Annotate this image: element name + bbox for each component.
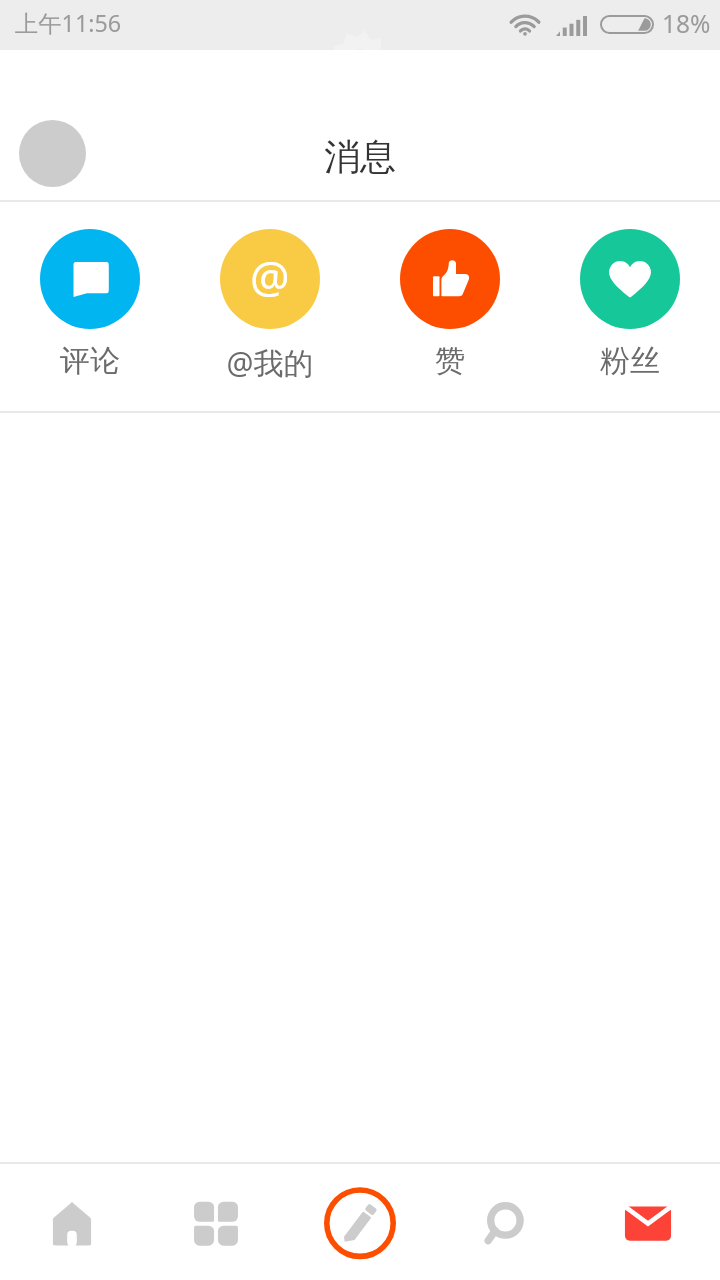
staticText: 粉丝 bbox=[540, 342, 720, 380]
button[interactable]: 粉丝 bbox=[540, 202, 720, 410]
button[interactable]: Messages bbox=[576, 1164, 720, 1280]
button[interactable]: Home bbox=[0, 1164, 144, 1280]
button[interactable]: Discover bbox=[144, 1164, 288, 1280]
staticText: 18% bbox=[662, 7, 711, 40]
staticText: 消息 bbox=[324, 134, 396, 179]
button[interactable]: 评论 bbox=[0, 202, 180, 410]
button[interactable]: 赞 bbox=[360, 202, 540, 410]
staticText: 评论 bbox=[0, 342, 180, 380]
button[interactable]: Compose bbox=[288, 1164, 432, 1280]
button[interactable]: @ bbox=[180, 202, 360, 410]
staticText: 赞 bbox=[360, 342, 540, 380]
staticText: @我的 bbox=[180, 342, 360, 383]
button[interactable]: Profile bbox=[19, 120, 86, 187]
staticText: 上午11:56 bbox=[15, 7, 122, 39]
staticText: @ bbox=[250, 246, 290, 306]
button[interactable]: Search bbox=[432, 1164, 576, 1280]
